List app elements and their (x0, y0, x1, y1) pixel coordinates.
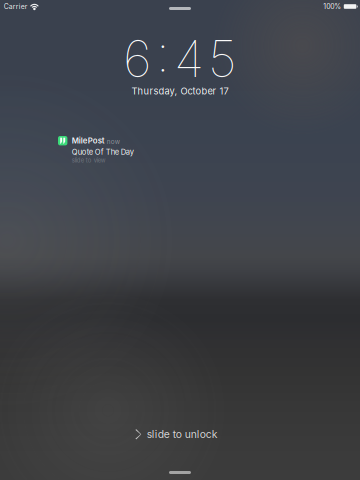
staticText: slide to view (72, 157, 106, 164)
staticText: 100% (323, 2, 341, 11)
staticText: Quote Of The Day (72, 147, 134, 156)
staticText: 6:45 (123, 28, 237, 89)
staticText: Carrier (4, 2, 28, 11)
button[interactable]: MilePost (0, 136, 360, 164)
staticText: slide to unlock (147, 428, 218, 441)
staticText: now (107, 138, 120, 145)
staticText: MilePost (72, 136, 105, 145)
staticText: Thursday, October 17 (131, 85, 228, 97)
